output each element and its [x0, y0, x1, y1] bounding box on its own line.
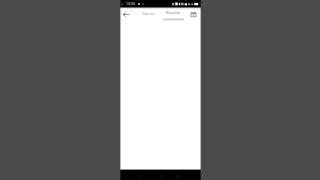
staticText: Results [166, 10, 181, 16]
button[interactable]: Home [156, 171, 166, 180]
staticText: 10:04 [126, 1, 135, 6]
staticText: Games [142, 11, 155, 16]
button[interactable]: Calendar [187, 8, 199, 20]
button[interactable]: Games [138, 7, 159, 20]
button[interactable]: Recents [173, 171, 183, 180]
button[interactable]: Back [120, 8, 132, 20]
button[interactable]: Results [163, 7, 184, 21]
